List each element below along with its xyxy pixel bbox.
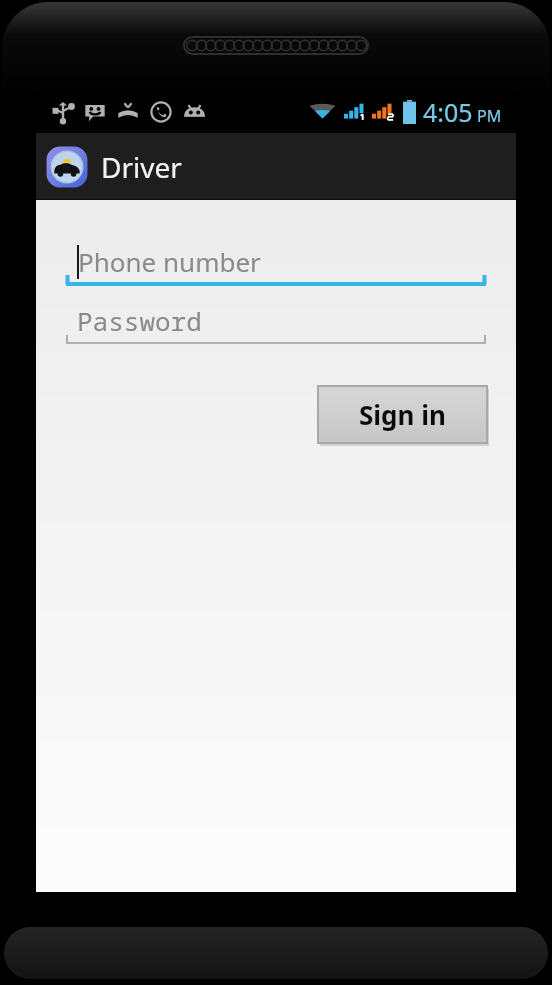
button[interactable]: Password xyxy=(66,294,486,347)
staticText: Password xyxy=(77,303,202,338)
staticText: Sign in xyxy=(359,397,446,432)
staticText: Phone number xyxy=(78,244,261,279)
staticText: 4:05 xyxy=(423,95,473,129)
staticText: Driver xyxy=(101,148,182,186)
button[interactable]: Phone number xyxy=(66,235,486,288)
staticText: PM xyxy=(477,105,502,127)
button[interactable]: Sign in xyxy=(318,386,487,443)
